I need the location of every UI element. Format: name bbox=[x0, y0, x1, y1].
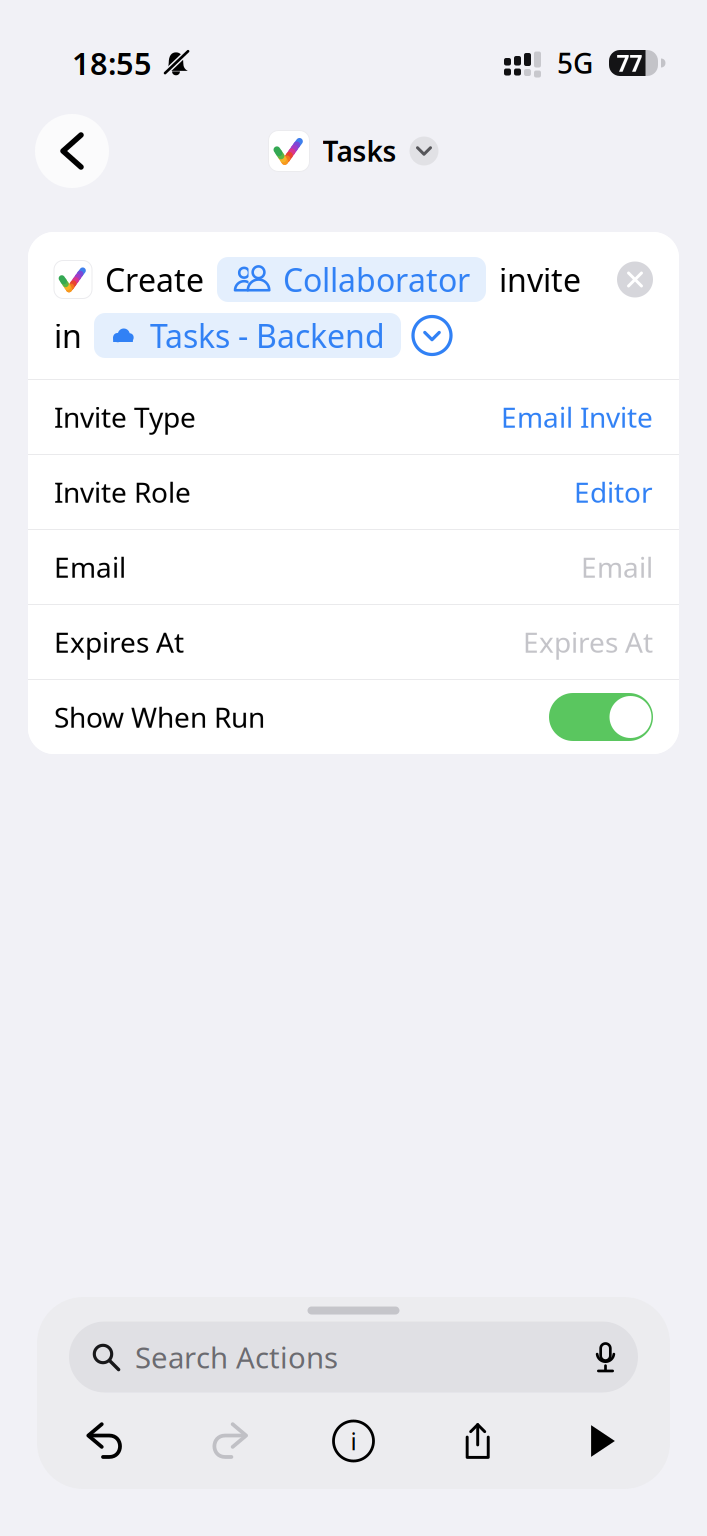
button[interactable]: Show more bbox=[413, 316, 451, 354]
button[interactable]: Tasks - Backend bbox=[94, 313, 401, 358]
button[interactable]: Tasks bbox=[268, 130, 438, 171]
staticText: Email Invite bbox=[501, 398, 653, 436]
staticText: in bbox=[54, 314, 82, 357]
staticText: Editor bbox=[574, 473, 653, 511]
button[interactable]: Email bbox=[28, 530, 679, 604]
staticText: Invite Role bbox=[54, 473, 191, 511]
staticText: Collaborator bbox=[283, 258, 470, 301]
button[interactable]: Back bbox=[35, 114, 109, 188]
staticText: Expires At bbox=[523, 623, 653, 661]
button[interactable]: Invite Role bbox=[28, 455, 679, 529]
staticText: Email bbox=[54, 548, 126, 586]
button[interactable]: Redo bbox=[167, 1398, 291, 1484]
staticText: Tasks bbox=[322, 132, 396, 170]
button[interactable]: Undo bbox=[43, 1398, 167, 1484]
button[interactable]: Invite Type bbox=[28, 380, 679, 454]
button[interactable]: Collaborator bbox=[217, 257, 486, 302]
staticText: i bbox=[350, 1425, 356, 1457]
button[interactable]: Show When Run bbox=[28, 680, 679, 754]
staticText: Expires At bbox=[54, 623, 184, 661]
button[interactable]: Run bbox=[540, 1398, 664, 1484]
staticText: Create bbox=[105, 258, 204, 301]
staticText: Tasks - Backend bbox=[150, 314, 385, 357]
staticText: 18:55 bbox=[72, 43, 152, 83]
button[interactable]: Search Actions bbox=[69, 1321, 638, 1392]
staticText: 77 bbox=[617, 48, 643, 78]
staticText: invite bbox=[499, 258, 581, 301]
staticText: Search Actions bbox=[135, 1337, 338, 1376]
button[interactable]: Share bbox=[416, 1398, 540, 1484]
staticText: Email bbox=[581, 548, 653, 586]
staticText: Invite Type bbox=[54, 398, 196, 436]
button[interactable]: Remove action bbox=[617, 261, 653, 297]
staticText: 5G bbox=[557, 44, 593, 82]
staticText: Show When Run bbox=[54, 698, 265, 736]
button[interactable]: Info bbox=[291, 1398, 416, 1484]
button[interactable]: Expires At bbox=[28, 605, 679, 679]
